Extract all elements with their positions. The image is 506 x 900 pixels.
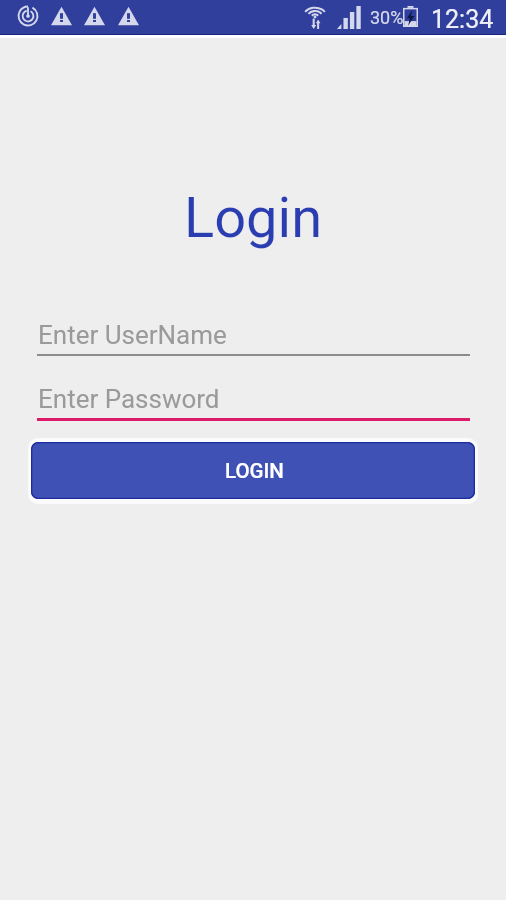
button[interactable]: LOGIN bbox=[31, 442, 475, 499]
other: Alarm bbox=[17, 5, 39, 27]
staticText: Login bbox=[184, 185, 323, 251]
other: Warning bbox=[51, 6, 72, 26]
button[interactable]: Enter Password bbox=[37, 376, 470, 421]
other: Wi-Fi bbox=[303, 4, 327, 30]
other: Warning bbox=[84, 6, 105, 26]
other: Warning bbox=[118, 6, 139, 26]
other: Signal strength bbox=[337, 6, 362, 29]
other: Battery charging bbox=[403, 6, 418, 27]
staticText: Enter UserName bbox=[38, 320, 227, 350]
staticText: 12:34 bbox=[431, 5, 494, 34]
button[interactable]: Enter UserName bbox=[37, 312, 470, 356]
staticText: 30% bbox=[370, 7, 404, 28]
staticText: Enter Password bbox=[38, 384, 220, 414]
staticText: LOGIN bbox=[225, 459, 284, 483]
